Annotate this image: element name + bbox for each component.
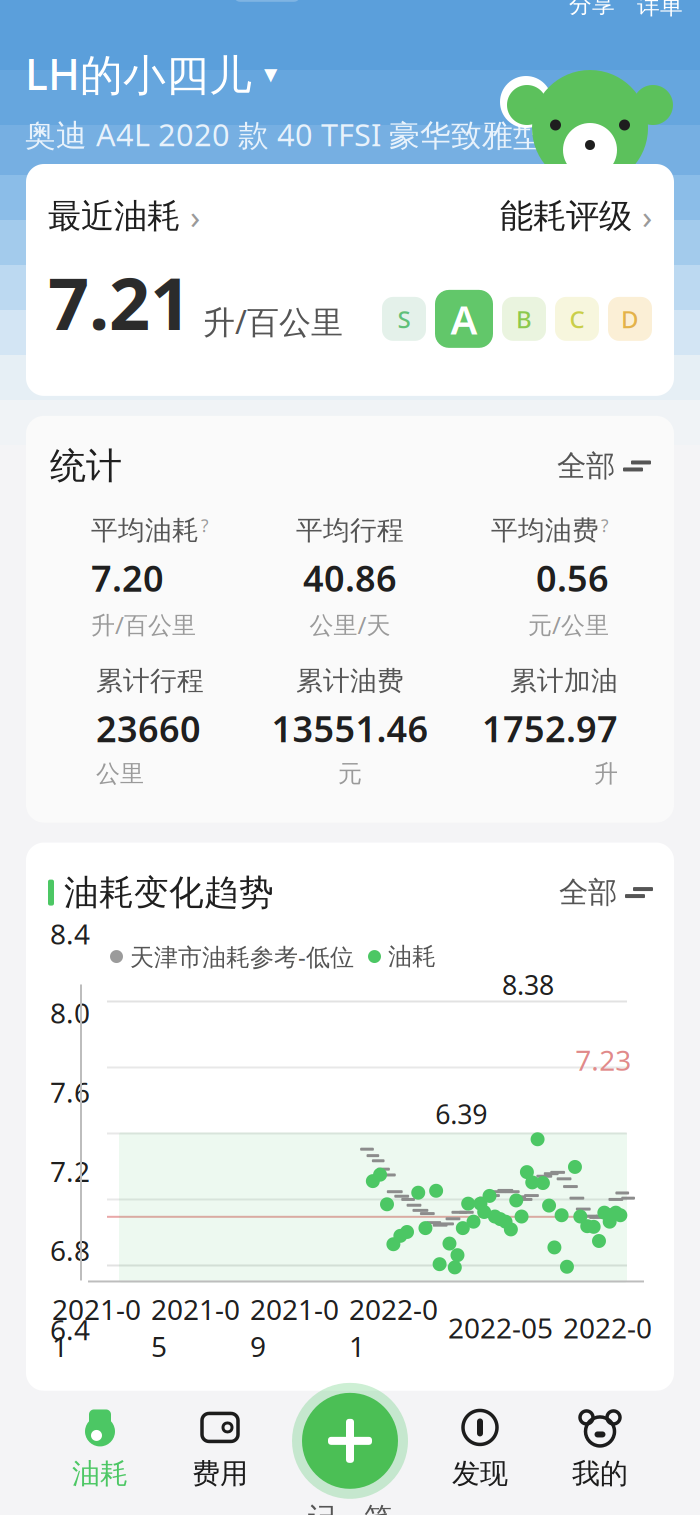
button[interactable]: 我的: [540, 1407, 660, 1491]
staticText: 8.4: [50, 915, 90, 952]
staticText: 统计: [50, 444, 122, 488]
button[interactable]: 发现: [420, 1407, 540, 1491]
staticText: LH的小四儿: [25, 45, 252, 102]
staticText: 详单: [637, 0, 683, 20]
button[interactable]: 95#: [234, 0, 490, 4]
staticText: 8.38: [502, 967, 554, 1002]
button[interactable]: 记一笔: [292, 1383, 408, 1499]
staticText: 油耗: [388, 942, 436, 971]
button[interactable]: LH的小四儿: [25, 45, 277, 102]
staticText: ▾: [264, 58, 277, 89]
staticText: 40.86: [303, 554, 397, 602]
staticText: 元/公里: [528, 609, 609, 641]
staticText: 2022-05: [448, 1309, 553, 1346]
staticText: 升: [594, 759, 618, 789]
staticText: 平均油费: [491, 514, 599, 547]
staticText: 我的: [572, 1456, 628, 1491]
button[interactable]: 详单: [637, 0, 683, 20]
staticText: 0.56: [536, 554, 609, 602]
staticText: 天津市油耗参考-低位: [130, 941, 354, 972]
staticText: 分享: [569, 0, 615, 18]
staticText: 发现: [452, 1456, 508, 1491]
staticText: S: [397, 303, 410, 335]
staticText: ?: [601, 514, 609, 537]
staticText: 2022-01: [349, 1290, 438, 1365]
staticText: 最近油耗: [48, 196, 180, 237]
button[interactable]: 全部: [559, 871, 652, 915]
staticText: 全部: [559, 875, 617, 911]
staticText: C: [569, 303, 584, 335]
staticText: 元: [338, 759, 362, 789]
staticText: 8.0: [50, 994, 90, 1031]
button[interactable]: 分享: [569, 0, 615, 18]
staticText: 23660: [96, 704, 201, 752]
staticText: Hi: [510, 82, 541, 121]
staticText: ›: [190, 194, 200, 238]
staticText: 累计油费: [296, 664, 404, 697]
staticText: A: [450, 292, 477, 345]
staticText: 升/百公里: [91, 609, 196, 641]
staticText: 累计行程: [96, 664, 204, 697]
staticText: D: [621, 303, 639, 335]
staticText: 7.6: [50, 1073, 90, 1110]
staticText: B: [516, 303, 532, 335]
staticText: 6.39: [435, 1096, 487, 1132]
staticText: 7.2: [50, 1152, 90, 1190]
staticText: 2021-05: [151, 1290, 240, 1365]
staticText: 全部: [557, 448, 615, 484]
staticText: 累计加油: [510, 664, 618, 697]
staticText: 公里: [96, 759, 144, 789]
staticText: 1752.97: [482, 704, 618, 752]
button[interactable]: 油耗: [40, 1407, 160, 1491]
staticText: 公里/天: [309, 609, 390, 641]
staticText: 6.8: [50, 1232, 90, 1269]
staticText: ›: [642, 194, 652, 238]
staticText: 2021-01: [52, 1290, 141, 1365]
staticText: 平均行程: [296, 514, 404, 547]
staticText: 能耗评级: [500, 196, 632, 237]
button[interactable]: 能耗评级: [500, 194, 652, 238]
button[interactable]: 费用: [160, 1407, 280, 1491]
staticText: ?: [201, 514, 209, 537]
staticText: 奥迪 A4L 2020 款 40 TFSI 豪华致雅型: [25, 114, 544, 155]
staticText: 7.21: [48, 254, 191, 350]
staticText: 平均油耗: [91, 514, 199, 547]
staticText: 2021-09: [250, 1290, 339, 1365]
staticText: 油耗: [72, 1456, 128, 1491]
staticText: 6.4: [50, 1311, 90, 1348]
staticText: 7.20: [91, 554, 164, 602]
staticText: 2022-0: [563, 1309, 652, 1346]
staticText: 费用: [192, 1456, 248, 1491]
staticText: 油耗变化趋势: [64, 871, 274, 914]
button[interactable]: 全部: [557, 444, 650, 488]
staticText: 记一笔: [308, 1501, 392, 1515]
staticText: 升/百公里: [203, 300, 343, 343]
staticText: 13551.46: [271, 704, 428, 752]
staticText: 7.23: [575, 1041, 631, 1078]
button[interactable]: 最近油耗: [48, 194, 200, 238]
